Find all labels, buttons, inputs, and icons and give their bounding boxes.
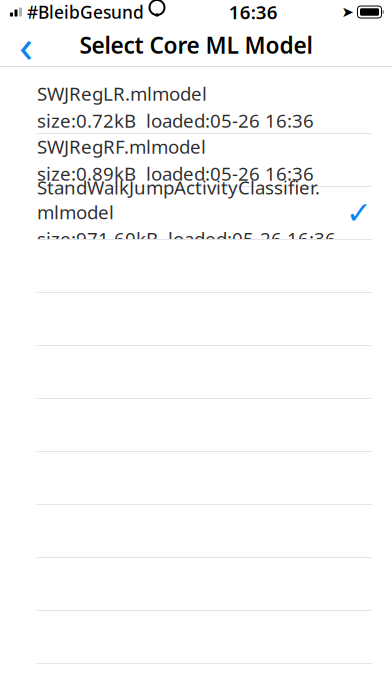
button[interactable]: Back	[6, 25, 46, 65]
staticText: size:0.89kB loaded:05-26 16:36	[37, 161, 314, 186]
staticText: ‹	[19, 15, 33, 75]
staticText: SWJRegLR.mlmodel	[37, 81, 207, 106]
staticText: StandWalkJumpActivityClassifier.mlmodel	[37, 175, 320, 224]
staticText: Select Core ML Model	[79, 30, 312, 60]
staticText: size:0.72kB loaded:05-26 16:36	[37, 108, 314, 133]
staticText: SWJRegRF.mlmodel	[37, 134, 206, 159]
staticText: ✓	[346, 196, 372, 230]
staticText: ➤	[341, 4, 353, 20]
staticText: 16:36	[229, 0, 278, 24]
staticText: size:971.60kB loaded:05-26 16:36	[37, 226, 336, 251]
button[interactable]: SWJRegRF.mlmodel	[0, 134, 392, 187]
button[interactable]: StandWalkJumpActivityClassifier.mlmodel	[0, 187, 392, 240]
staticText: #BleibGesund	[27, 0, 144, 23]
button[interactable]: SWJRegLR.mlmodel	[0, 81, 392, 134]
